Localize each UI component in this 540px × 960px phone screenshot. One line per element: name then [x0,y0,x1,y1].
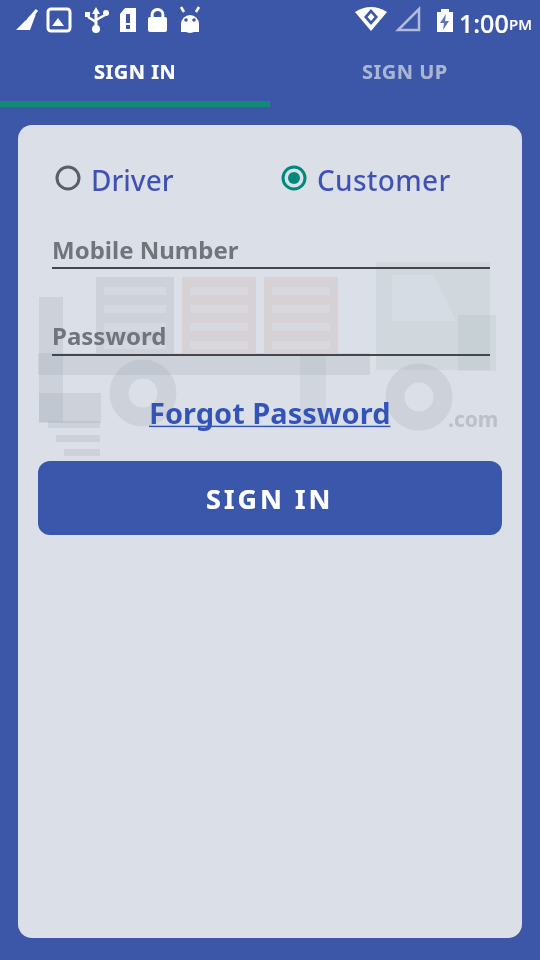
staticText: PM [509,14,532,34]
staticText: SIGN IN [206,480,334,517]
button[interactable]: SIGN UP [270,40,540,102]
button[interactable]: SIGN IN [0,40,270,102]
button[interactable]: SIGN IN [38,461,502,535]
button[interactable]: Forgot Password [149,393,391,432]
staticText: .com [448,405,499,434]
staticText: SIGN UP [362,58,448,85]
staticText: Mobile Number [52,233,239,266]
staticText: SIGN IN [94,58,177,85]
staticText: Password [52,319,167,352]
staticText: 1:00 [459,6,509,40]
staticText: Driver [91,161,174,195]
button[interactable]: Customer [281,161,451,195]
staticText: Customer [317,161,451,195]
button[interactable]: Driver [55,161,174,195]
